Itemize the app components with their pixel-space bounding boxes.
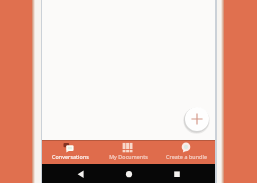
button[interactable] [105, 164, 153, 183]
staticText: Conversations [52, 153, 89, 160]
button[interactable]: Conversations [42, 140, 99, 164]
button[interactable]: My Documents [99, 140, 157, 164]
staticText: Create a bundle [166, 153, 207, 160]
button[interactable] [57, 164, 105, 183]
button[interactable] [153, 164, 201, 183]
button[interactable] [185, 107, 209, 131]
staticText: My Documents [109, 153, 148, 160]
button[interactable]: Create a bundle [157, 140, 215, 164]
